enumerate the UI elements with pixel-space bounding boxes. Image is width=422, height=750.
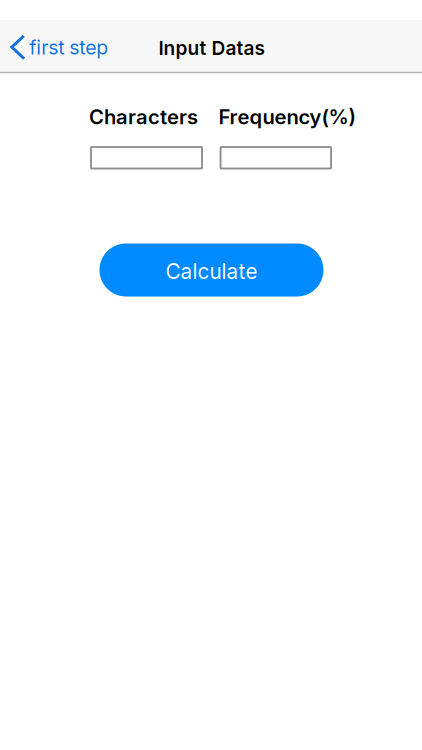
button[interactable]: Calculate <box>99 243 323 296</box>
staticText: Characters <box>89 105 198 129</box>
staticText: Calculate <box>165 259 257 284</box>
button[interactable]: Frequency (%) <box>221 147 331 168</box>
staticText: Frequency(%) <box>218 105 355 129</box>
button[interactable]: Characters <box>91 147 202 168</box>
staticText: first step <box>29 36 108 59</box>
staticText: Input Datas <box>158 36 264 60</box>
button[interactable]: first step <box>11 25 110 69</box>
